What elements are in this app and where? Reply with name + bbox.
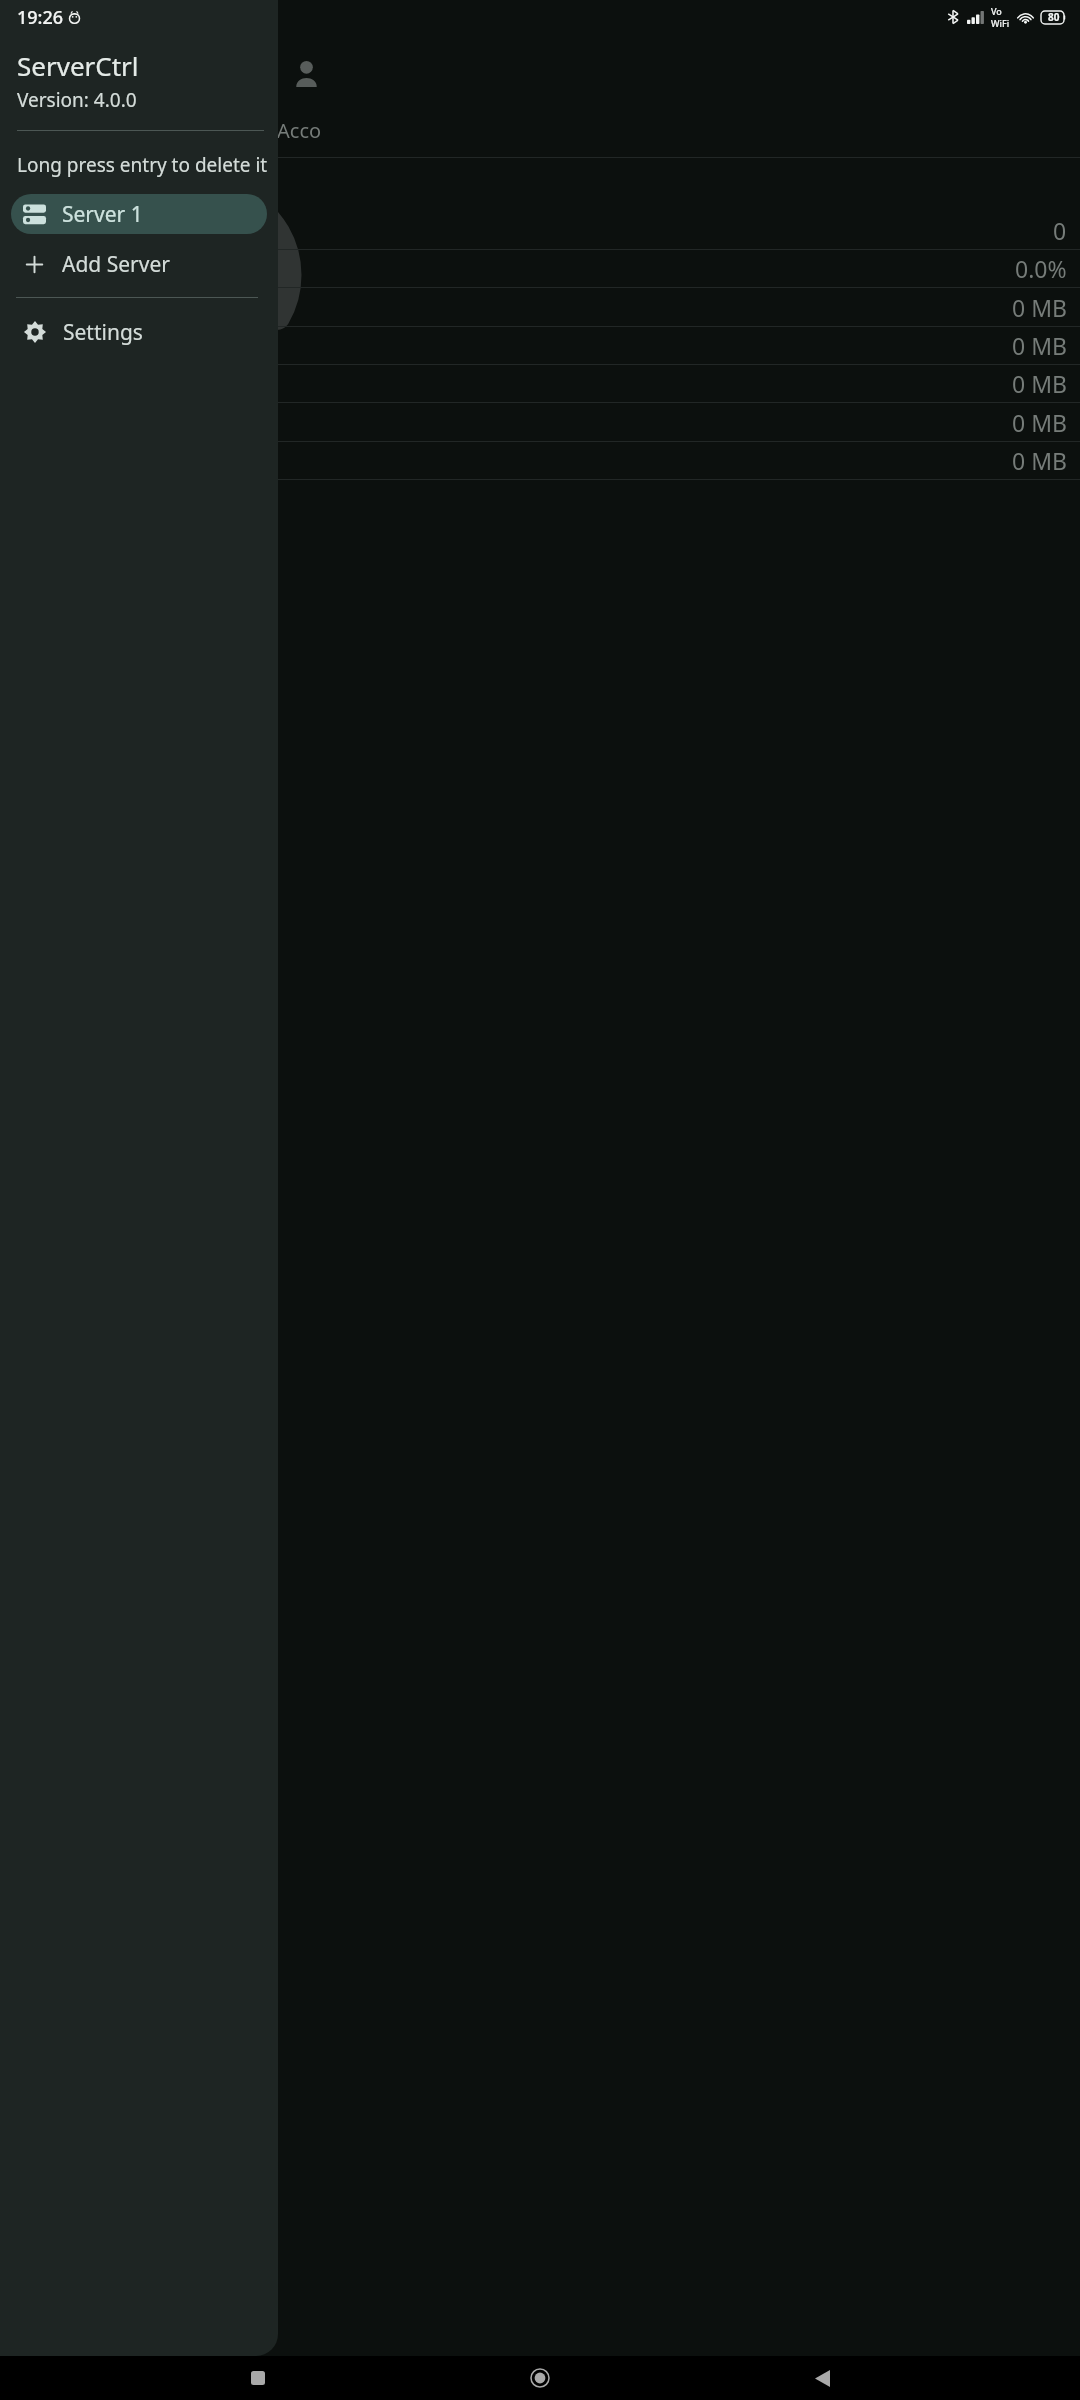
staticText: Vo	[991, 5, 1002, 17]
staticText: Long press entry to delete it	[17, 152, 268, 178]
staticText: Version: 4.0.0	[17, 87, 137, 113]
staticText: ServerCtrl	[17, 48, 139, 83]
staticText: 80	[1048, 10, 1060, 24]
staticText: 0	[1053, 215, 1067, 246]
staticText: Server 1	[62, 200, 143, 229]
button[interactable]: Home	[516, 2356, 564, 2400]
button[interactable]: 0	[0, 211, 1080, 249]
staticText: 0 MB	[1012, 445, 1067, 476]
button[interactable]: Back	[798, 2356, 846, 2400]
staticText: 0%	[173, 232, 224, 281]
staticText: Add Server	[62, 250, 170, 279]
staticText: 19:26	[17, 5, 64, 30]
staticText: 0 MB	[1012, 330, 1067, 361]
button[interactable]: Server 1	[11, 194, 267, 234]
staticText: 0.0%	[1015, 253, 1067, 284]
button[interactable]: Settings	[11, 312, 267, 352]
staticText: 0 MB	[1012, 407, 1067, 438]
button[interactable]: Add Server	[11, 244, 267, 284]
button[interactable]: Recents	[234, 2356, 282, 2400]
staticText: 0 MB	[1012, 292, 1067, 323]
button[interactable]: 0.0%	[0, 249, 1080, 287]
staticText: 0 MB	[1012, 368, 1067, 399]
staticText: WiFi	[991, 17, 1010, 29]
staticText: Acco	[277, 117, 322, 144]
button[interactable]: Account	[293, 60, 320, 87]
button[interactable]: 0 MB	[0, 326, 1080, 364]
button[interactable]: 0 MB	[0, 288, 1080, 326]
staticText: Settings	[63, 318, 143, 347]
staticText: Log	[180, 117, 215, 144]
button[interactable]: 0 MB	[0, 441, 1080, 479]
button[interactable]: 0 MB	[0, 403, 1080, 441]
staticText: Usage	[170, 292, 235, 322]
button[interactable]: 0 MB	[0, 364, 1080, 402]
